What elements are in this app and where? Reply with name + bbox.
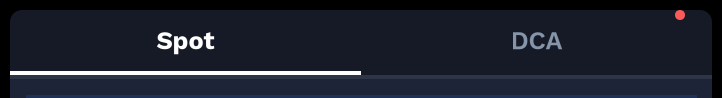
staticText: Spot (156, 26, 214, 55)
staticText: DCA (510, 26, 562, 55)
button[interactable]: Spot (10, 10, 361, 71)
button[interactable]: DCA (361, 10, 712, 71)
